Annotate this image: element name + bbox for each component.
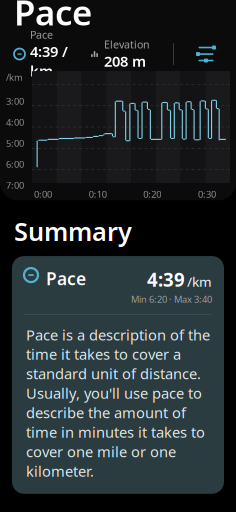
staticText: 0:10 [89,188,107,200]
staticText: 4:00 [6,116,24,128]
staticText: Pace is a description of the time it tak… [26,325,210,481]
staticText: /km [6,71,23,83]
staticText: Pace [46,267,86,290]
staticText: Pace [30,27,53,42]
staticText: 0:20 [143,188,161,200]
staticText: 5:00 [6,137,24,149]
staticText: Pace [14,0,92,35]
staticText: 3:00 [6,95,24,107]
staticText: 4:39 /km [30,42,68,81]
staticText: Elevation [104,37,150,51]
staticText: 0:00 [34,188,52,200]
button[interactable]: Chart options [190,40,222,68]
staticText: 208 m [104,51,146,71]
staticText: Min 6:20 · Max 3:40 [131,293,212,305]
staticText: 0:30 [198,188,216,200]
staticText: /km [187,273,212,290]
staticText: 7:00 [6,179,24,191]
staticText: Summary [14,214,132,248]
staticText: 4:39 [147,267,185,292]
staticText: 6:00 [6,158,24,170]
